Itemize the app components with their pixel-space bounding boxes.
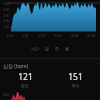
- staticText: 1:30: [3, 25, 10, 29]
- staticText: 시간: [31, 46, 39, 51]
- staticText: 주: [55, 46, 59, 51]
- staticText: 12:00: [37, 34, 46, 38]
- staticText: 월: [65, 46, 69, 51]
- staticText: 3:30: [3, 14, 10, 18]
- staticText: 5:30: [3, 2, 10, 6]
- staticText: 151: [68, 71, 83, 83]
- staticText: 평균: [21, 83, 29, 88]
- button[interactable]: 월: [65, 46, 69, 51]
- staticText: 15:00: [53, 34, 62, 38]
- staticText: 일: [45, 46, 49, 51]
- staticText: 200: [3, 92, 10, 97]
- staticText: 심장 (bpm): [3, 63, 29, 70]
- staticText: 6:00: [7, 34, 14, 38]
- button[interactable]: 주: [55, 46, 59, 51]
- staticText: 18:00: [70, 34, 79, 38]
- button[interactable]: 일: [45, 46, 49, 51]
- staticText: 121: [18, 71, 33, 83]
- staticText: 최대: [71, 83, 79, 88]
- staticText: 9:00: [22, 34, 29, 38]
- staticText: 4:30: [3, 8, 10, 12]
- button[interactable]: 시간: [31, 46, 39, 51]
- staticText: 21:00: [87, 34, 96, 38]
- staticText: 2:30: [3, 19, 10, 23]
